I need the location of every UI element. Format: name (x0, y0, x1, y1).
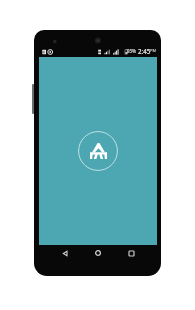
button[interactable]: Back (52, 246, 78, 260)
staticText: PM (150, 48, 157, 53)
button[interactable]: App logo (78, 131, 118, 171)
button[interactable]: Volume (32, 84, 35, 114)
staticText: 93% (127, 48, 136, 54)
button[interactable]: Home (85, 246, 111, 260)
button[interactable]: Recent apps (118, 246, 144, 260)
staticText: 2:45 (138, 47, 151, 55)
